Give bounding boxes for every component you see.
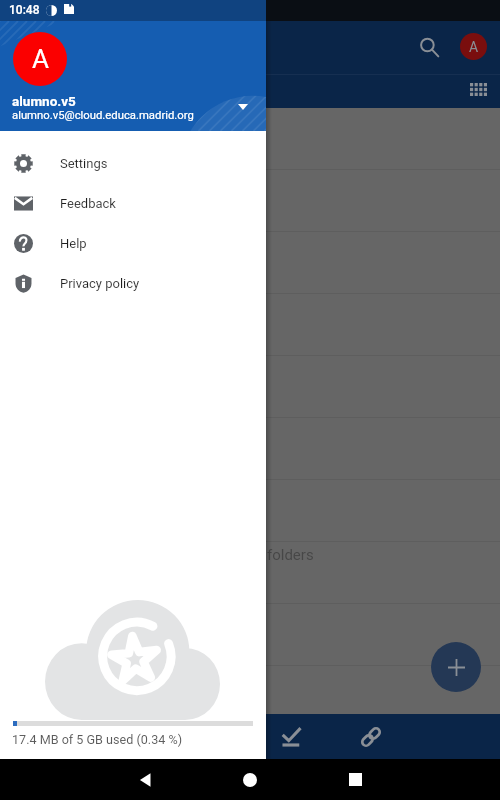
button[interactable]: Help <box>0 223 266 263</box>
button[interactable] <box>0 666 500 727</box>
staticText: alumno.v5@cloud.educa.madrid.org <box>12 109 194 122</box>
staticText: 17.4 MB of 5 GB used (0.34 %) <box>12 732 183 747</box>
button[interactable]: Grid view <box>463 74 493 104</box>
button[interactable] <box>0 418 500 479</box>
button[interactable] <box>0 728 500 789</box>
button[interactable]: Switch account <box>230 94 256 120</box>
button[interactable] <box>0 480 500 541</box>
button[interactable] <box>0 170 500 231</box>
button[interactable]: Search <box>0 0 500 759</box>
button[interactable]: Account <box>460 33 487 60</box>
other: Back <box>138 772 154 788</box>
staticText: A <box>469 39 479 55</box>
button[interactable] <box>0 108 500 169</box>
staticText: Help <box>60 236 87 251</box>
button[interactable]: Offline files <box>271 714 311 759</box>
staticText: No folders <box>244 546 314 564</box>
button[interactable] <box>0 232 500 293</box>
staticText: Privacy policy <box>60 276 140 291</box>
button[interactable]: Search <box>414 32 444 62</box>
button[interactable]: Shared links <box>351 714 391 759</box>
button[interactable]: A <box>13 32 67 86</box>
other: Home <box>243 773 257 787</box>
button[interactable] <box>0 294 500 355</box>
button[interactable]: Feedback <box>0 183 266 223</box>
button[interactable] <box>0 604 500 665</box>
button[interactable]: Privacy policy <box>0 263 266 303</box>
staticText: 10:48 <box>9 3 40 17</box>
staticText: Settings <box>60 156 108 171</box>
button[interactable]: Settings <box>0 143 266 183</box>
staticText: alumno.v5 <box>12 93 76 109</box>
staticText: Feedback <box>60 196 116 211</box>
staticText: A <box>32 44 49 74</box>
button[interactable] <box>0 356 500 417</box>
button[interactable]: Add <box>431 642 481 692</box>
button[interactable] <box>0 542 500 603</box>
